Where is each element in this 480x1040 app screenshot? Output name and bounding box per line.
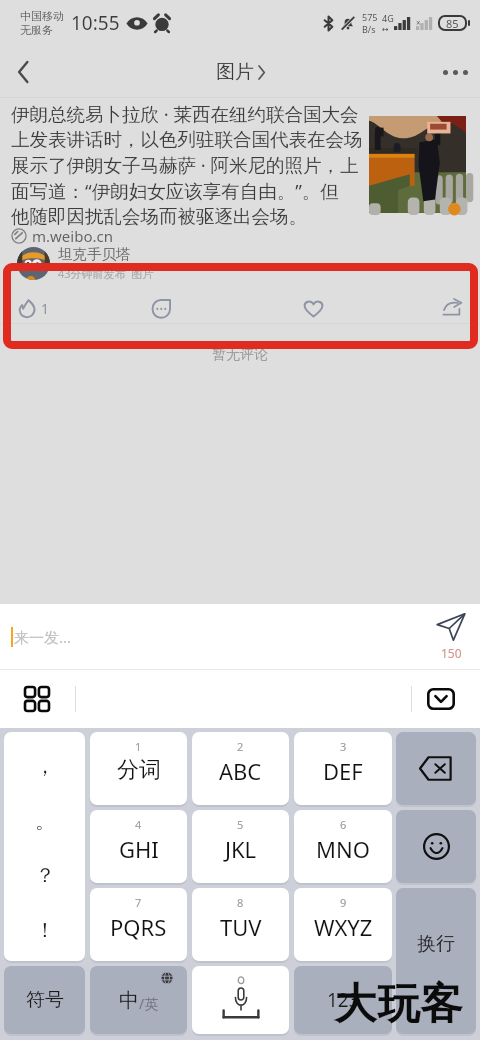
- button[interactable]: 图片: [216, 60, 265, 84]
- staticText: 2: [237, 739, 244, 754]
- button[interactable]: 坦克手贝塔: [17, 245, 154, 281]
- staticText: ！: [35, 918, 55, 943]
- button[interactable]: Share: [430, 286, 476, 330]
- staticText: 10:55: [71, 10, 120, 36]
- staticText: JKL: [225, 834, 257, 864]
- staticText: ↔: [382, 25, 389, 34]
- staticText: TUV: [220, 912, 262, 942]
- staticText: 575: [362, 11, 378, 23]
- button[interactable]: 换行: [396, 888, 476, 1034]
- button[interactable]: Emoji: [396, 810, 476, 883]
- button[interactable]: Hide keyboard: [424, 682, 458, 716]
- button[interactable]: m.weibo.cn: [11, 226, 113, 246]
- staticText: 暂无评论: [212, 346, 268, 364]
- staticText: 5: [237, 817, 244, 832]
- staticText: 8: [237, 895, 244, 910]
- staticText: 图片: [216, 60, 254, 84]
- staticText: 伊朗总统易卜拉欣 · 莱西在纽约联合国大会 上发表讲话时，以色列驻联合国代表在会…: [11, 101, 363, 228]
- staticText: m.weibo.cn: [32, 226, 113, 246]
- staticText: 换行: [417, 932, 455, 956]
- staticText: 9: [340, 895, 347, 910]
- staticText: WXYZ: [314, 912, 373, 942]
- staticText: 4: [135, 817, 142, 832]
- staticText: 1: [41, 299, 50, 318]
- button[interactable]: 符号: [4, 966, 85, 1034]
- button[interactable]: 2: [192, 732, 289, 805]
- button[interactable]: 中: [90, 966, 187, 1034]
- button[interactable]: 6: [294, 810, 392, 883]
- button[interactable]: Apps: [21, 683, 53, 715]
- staticText: 。: [35, 809, 55, 834]
- button[interactable]: 9: [294, 888, 392, 961]
- button[interactable]: 8: [192, 888, 289, 961]
- staticText: 85: [446, 16, 459, 31]
- staticText: ×: [416, 17, 421, 28]
- staticText: DEF: [323, 756, 363, 786]
- button[interactable]: Comment: [138, 286, 184, 330]
- staticText: 3: [340, 739, 347, 754]
- staticText: MNO: [316, 834, 370, 864]
- staticText: 无服务: [20, 23, 53, 37]
- button[interactable]: Backspace: [396, 732, 476, 805]
- button[interactable]: ，: [4, 732, 85, 961]
- button[interactable]: 123: [294, 966, 392, 1034]
- staticText: 中: [119, 988, 139, 1013]
- button[interactable]: Back: [0, 49, 46, 95]
- button[interactable]: 1: [8, 286, 138, 330]
- button[interactable]: 1: [90, 732, 187, 805]
- button[interactable]: 7: [90, 888, 187, 961]
- staticText: 6: [340, 817, 347, 832]
- staticText: 1: [135, 739, 142, 754]
- staticText: /英: [139, 994, 159, 1013]
- button[interactable]: Send: [436, 612, 466, 642]
- staticText: 分词: [117, 756, 161, 784]
- staticText: B/s: [362, 23, 376, 35]
- button[interactable]: 3: [294, 732, 392, 805]
- staticText: ？: [35, 863, 55, 888]
- staticText: 中国移动: [20, 9, 64, 23]
- staticText: 150: [441, 645, 462, 661]
- staticText: ABC: [219, 756, 262, 786]
- button[interactable]: 4: [90, 810, 187, 883]
- button[interactable]: More options: [430, 47, 480, 97]
- staticText: 符号: [26, 988, 64, 1012]
- button[interactable]: Like: [290, 286, 336, 330]
- staticText: 来一发...: [14, 627, 72, 647]
- staticText: 43分钟前发布 图片: [58, 266, 154, 281]
- staticText: 4G: [382, 12, 394, 24]
- staticText: ，: [35, 754, 55, 779]
- button[interactable]: Space / voice input: [192, 966, 289, 1034]
- staticText: 7: [135, 895, 142, 910]
- staticText: PQRS: [110, 912, 167, 942]
- staticText: 坦克手贝塔: [58, 245, 131, 263]
- staticText: 大玩客: [334, 978, 463, 1031]
- staticText: 123: [327, 987, 360, 1013]
- button[interactable]: 5: [192, 810, 289, 883]
- staticText: GHI: [119, 834, 159, 864]
